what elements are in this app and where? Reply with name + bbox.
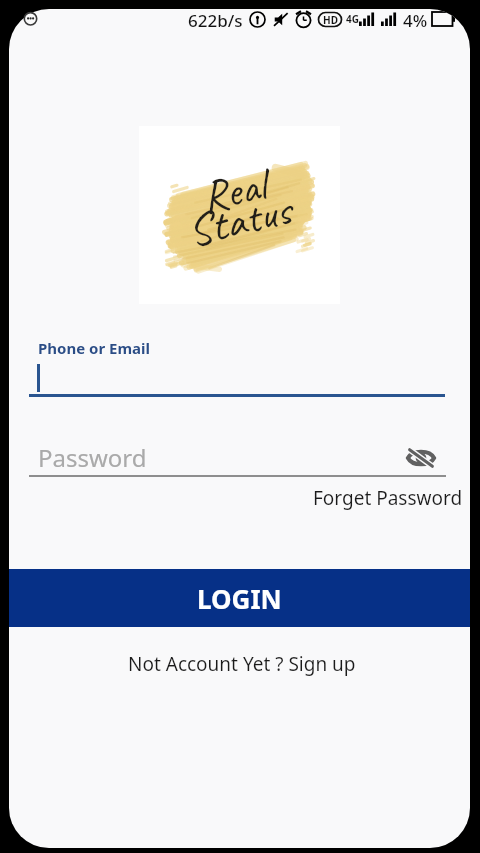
button[interactable]: LOGIN xyxy=(9,569,470,627)
staticText: Forget Password xyxy=(313,485,463,511)
button[interactable]: Not Account Yet ? Sign up xyxy=(122,649,362,679)
staticText: 4% xyxy=(403,9,428,29)
button[interactable]: Show password xyxy=(401,438,441,478)
button[interactable]: Phone or Email input xyxy=(29,360,445,397)
button[interactable]: Forget Password xyxy=(311,483,465,513)
staticText: Real xyxy=(196,156,271,226)
staticText: LOGIN xyxy=(197,581,282,616)
staticText: Status xyxy=(182,181,297,260)
staticText: 622b/s xyxy=(188,9,243,29)
staticText: 4G xyxy=(346,12,359,26)
staticText: Not Account Yet ? Sign up xyxy=(128,651,356,677)
staticText: HD xyxy=(323,13,338,27)
staticText: Phone or Email xyxy=(38,338,150,358)
staticText: Password xyxy=(38,441,147,474)
button[interactable]: Password input xyxy=(29,436,446,477)
